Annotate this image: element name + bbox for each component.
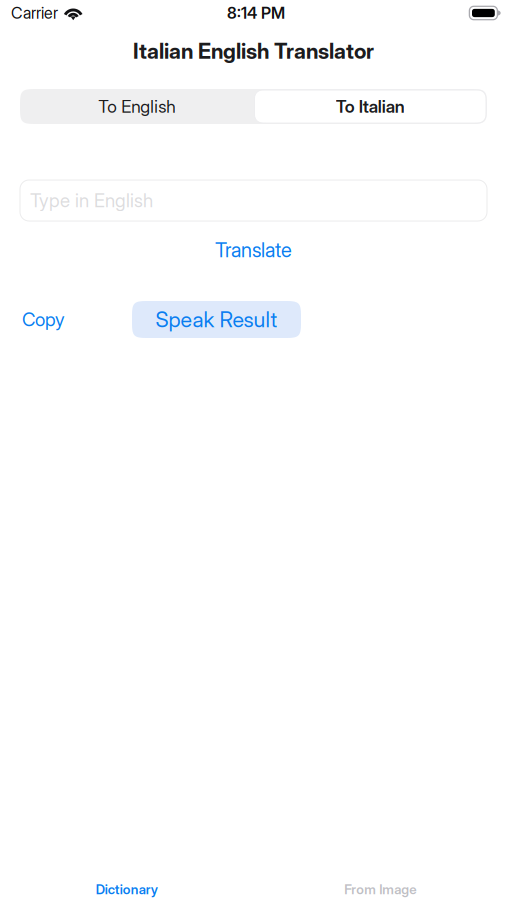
button[interactable]: To Italian [253,89,487,124]
staticText: Type in English [30,189,153,211]
staticText: Translate [215,238,292,262]
button[interactable]: Dictionary tab [0,879,253,900]
button[interactable]: Translate [0,236,507,264]
staticText: Speak Result [155,307,277,332]
staticText: To English [98,96,175,117]
staticText: Carrier [11,4,58,22]
staticText: 8:14 PM [227,4,285,22]
staticText: From Image [344,882,416,897]
button[interactable]: To English [20,89,253,124]
staticText: Copy [22,308,65,330]
button[interactable]: Speak Result [132,301,301,338]
button[interactable]: Copy [19,301,68,337]
staticText: Italian English Translator [133,38,374,64]
button[interactable]: From Image tab [253,879,507,900]
staticText: Dictionary [96,882,158,897]
staticText: To Italian [336,96,405,117]
